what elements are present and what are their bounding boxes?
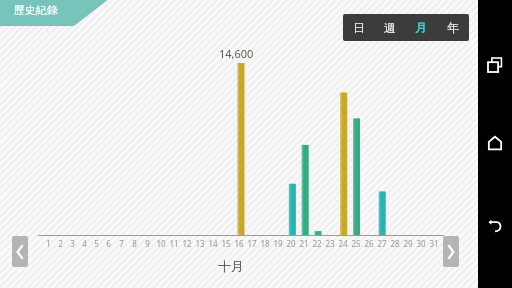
- staticText: 4: [82, 238, 87, 249]
- staticText: 14,600: [219, 46, 254, 61]
- button[interactable]: 週: [374, 14, 405, 41]
- staticText: 年: [447, 20, 459, 35]
- staticText: 5: [94, 238, 99, 249]
- staticText: 29: [403, 238, 413, 249]
- button[interactable]: 歷史紀錄: [14, 3, 58, 17]
- staticText: 13: [195, 238, 205, 249]
- staticText: 歷史紀錄: [14, 3, 58, 17]
- staticText: 16: [234, 238, 244, 249]
- button[interactable]: Next: [443, 236, 459, 267]
- staticText: 30: [416, 238, 426, 249]
- staticText: 26: [364, 238, 374, 249]
- button[interactable]: 日: [343, 14, 374, 41]
- staticText: 3: [70, 238, 75, 249]
- staticText: 十月: [218, 258, 244, 274]
- button[interactable]: Recents: [482, 52, 508, 78]
- staticText: 6: [106, 238, 111, 249]
- staticText: 8: [132, 238, 137, 249]
- staticText: 31: [429, 238, 439, 249]
- staticText: 10: [156, 238, 166, 249]
- staticText: 20: [286, 238, 296, 249]
- button[interactable]: Back: [482, 212, 508, 238]
- staticText: 18: [260, 238, 270, 249]
- staticText: 1: [46, 238, 51, 249]
- staticText: 週: [384, 20, 396, 35]
- staticText: 23: [325, 238, 335, 249]
- staticText: 月: [415, 20, 427, 35]
- staticText: 17: [247, 238, 257, 249]
- staticText: 7: [119, 238, 124, 249]
- staticText: 27: [377, 238, 387, 249]
- staticText: 19: [273, 238, 283, 249]
- button[interactable]: 年: [437, 14, 469, 41]
- button[interactable]: 月: [405, 14, 437, 41]
- staticText: 9: [145, 238, 150, 249]
- button[interactable]: Previous: [12, 236, 28, 267]
- staticText: 24: [338, 238, 348, 249]
- staticText: 21: [299, 238, 309, 249]
- staticText: 22: [312, 238, 322, 249]
- staticText: 12: [182, 238, 192, 249]
- button[interactable]: Home: [482, 130, 508, 156]
- staticText: 2: [58, 238, 63, 249]
- staticText: 14: [208, 238, 218, 249]
- staticText: 15: [221, 238, 231, 249]
- staticText: 日: [353, 20, 365, 35]
- staticText: 11: [169, 238, 179, 249]
- staticText: 28: [390, 238, 400, 249]
- staticText: 25: [351, 238, 361, 249]
